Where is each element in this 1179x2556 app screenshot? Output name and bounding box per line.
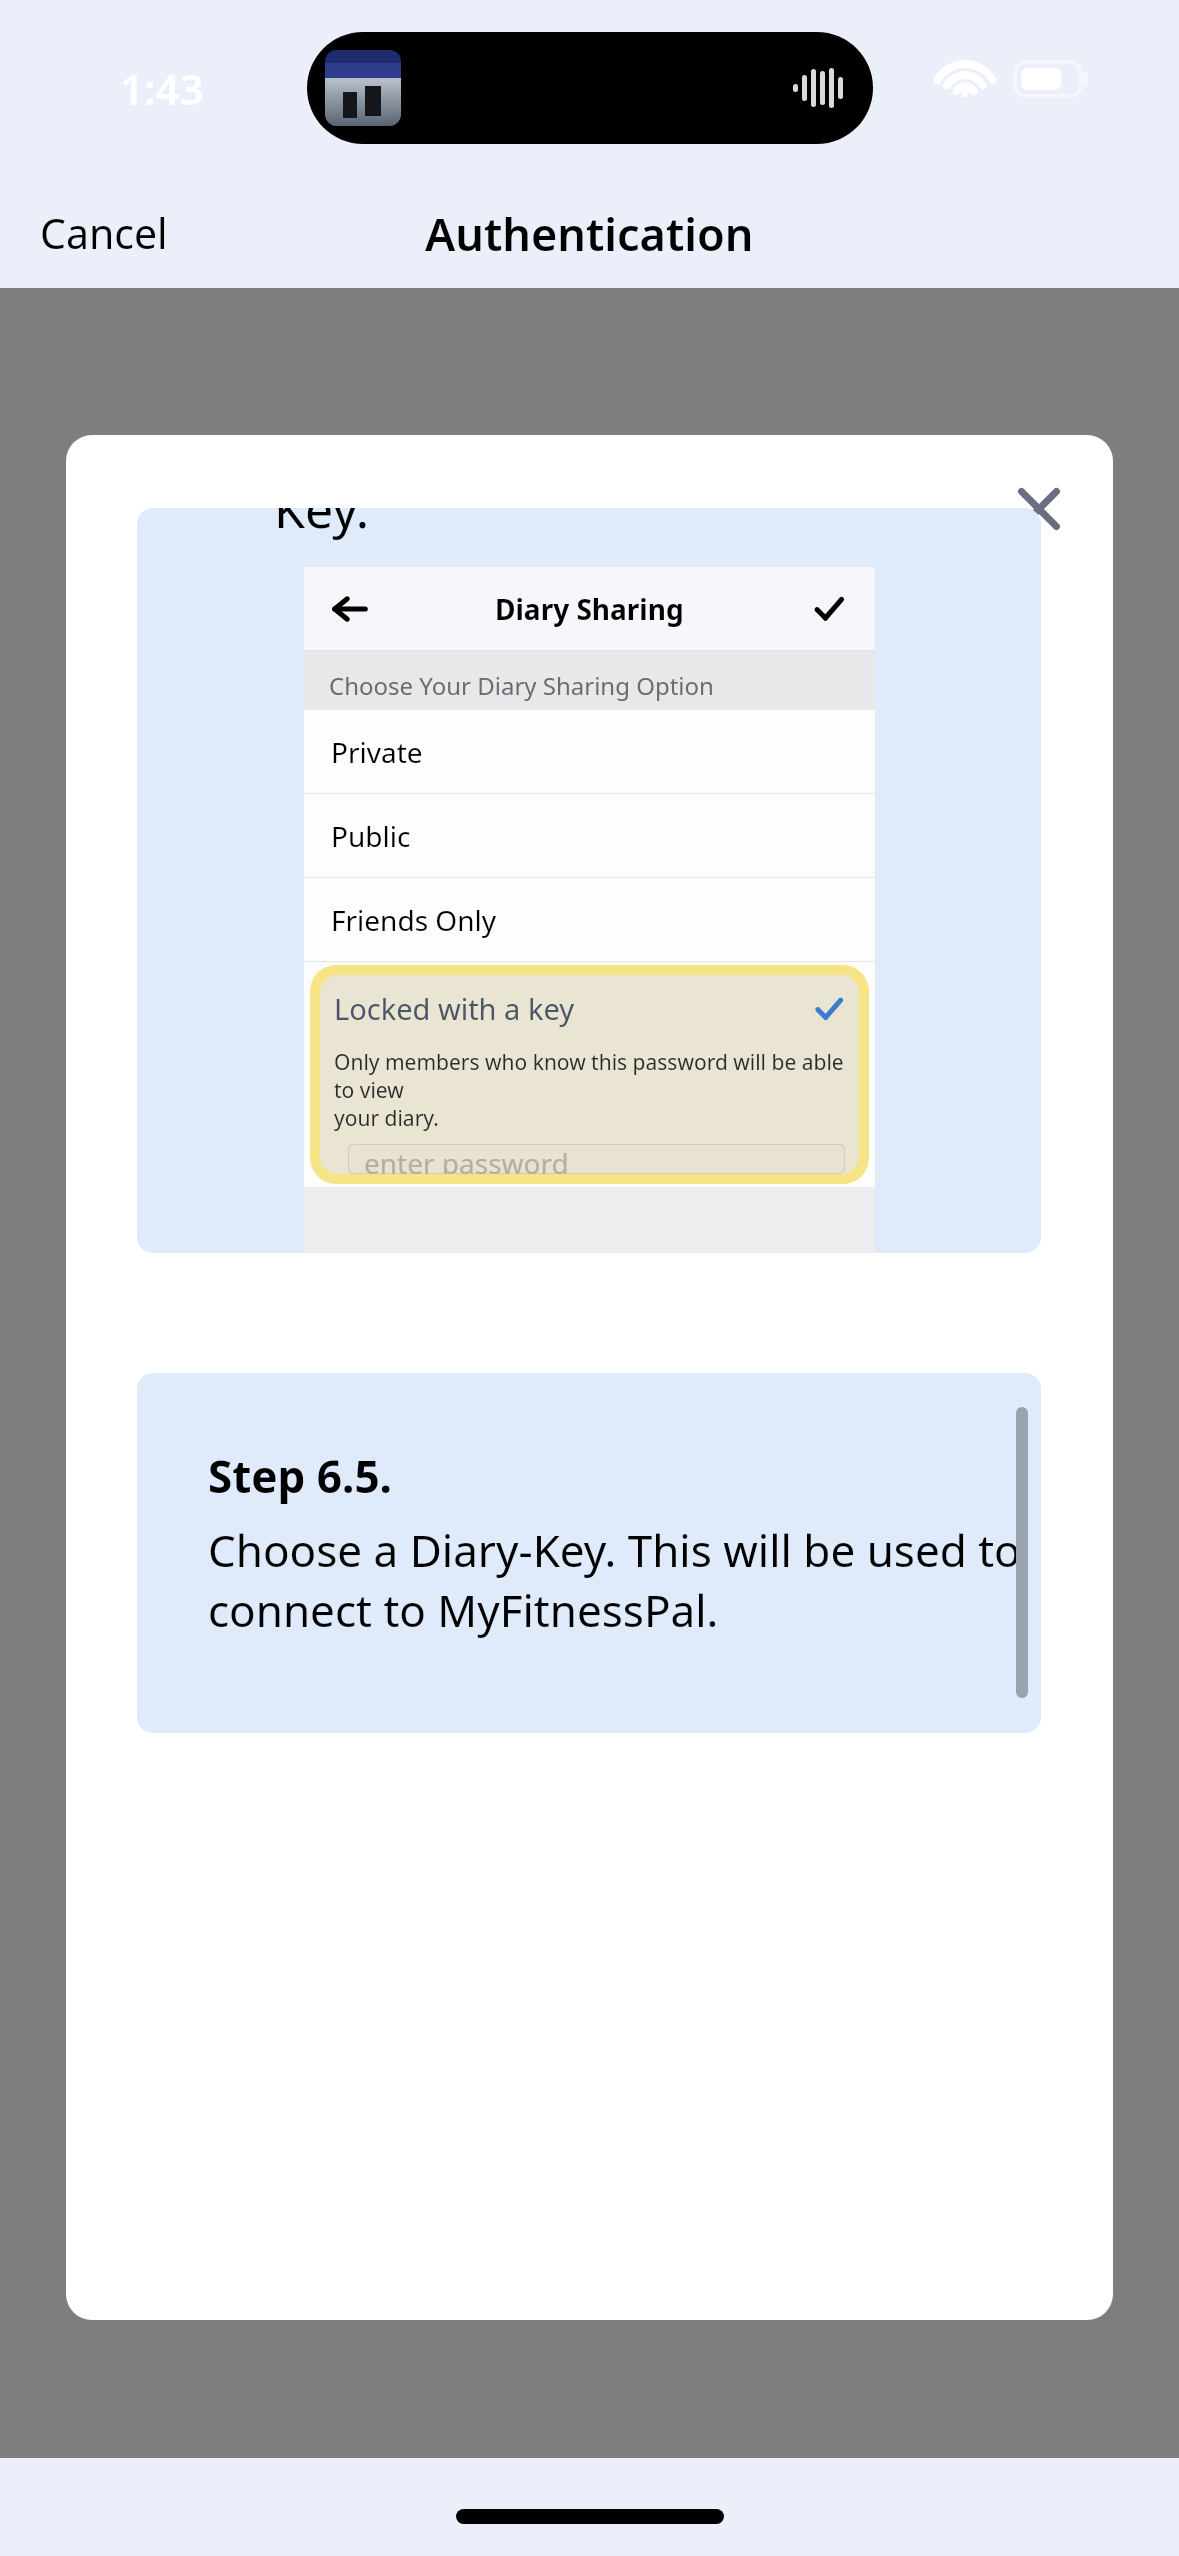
- staticText: enter password: [364, 1144, 569, 1174]
- staticText: Step 6.5.: [208, 1446, 392, 1506]
- staticText: Key.: [274, 508, 370, 543]
- staticText: Authentication: [425, 203, 754, 264]
- button[interactable]: Back: [322, 581, 378, 637]
- button[interactable]: Locked with a key: [320, 975, 859, 1174]
- staticText: Choose a Diary-Key. This will be used to…: [208, 1520, 1021, 1640]
- staticText: 1:43: [120, 60, 204, 117]
- staticText: Public: [331, 817, 411, 855]
- staticText: Friends Only: [331, 901, 497, 939]
- button[interactable]: Confirm: [801, 581, 857, 637]
- staticText: Cancel: [40, 205, 168, 261]
- staticText: Diary Sharing: [495, 590, 684, 628]
- button[interactable]: Cancel: [34, 197, 174, 269]
- button[interactable]: Friends Only: [304, 878, 875, 961]
- button[interactable]: enter password: [348, 1144, 845, 1174]
- staticText: Only members who know this password will…: [334, 1048, 849, 1132]
- button[interactable]: Public: [304, 794, 875, 877]
- staticText: Private: [331, 733, 423, 771]
- button[interactable]: Private: [304, 710, 875, 793]
- button[interactable]: Close: [991, 461, 1087, 557]
- staticText: Choose Your Diary Sharing Option: [329, 669, 714, 702]
- staticText: Locked with a key: [334, 989, 574, 1028]
